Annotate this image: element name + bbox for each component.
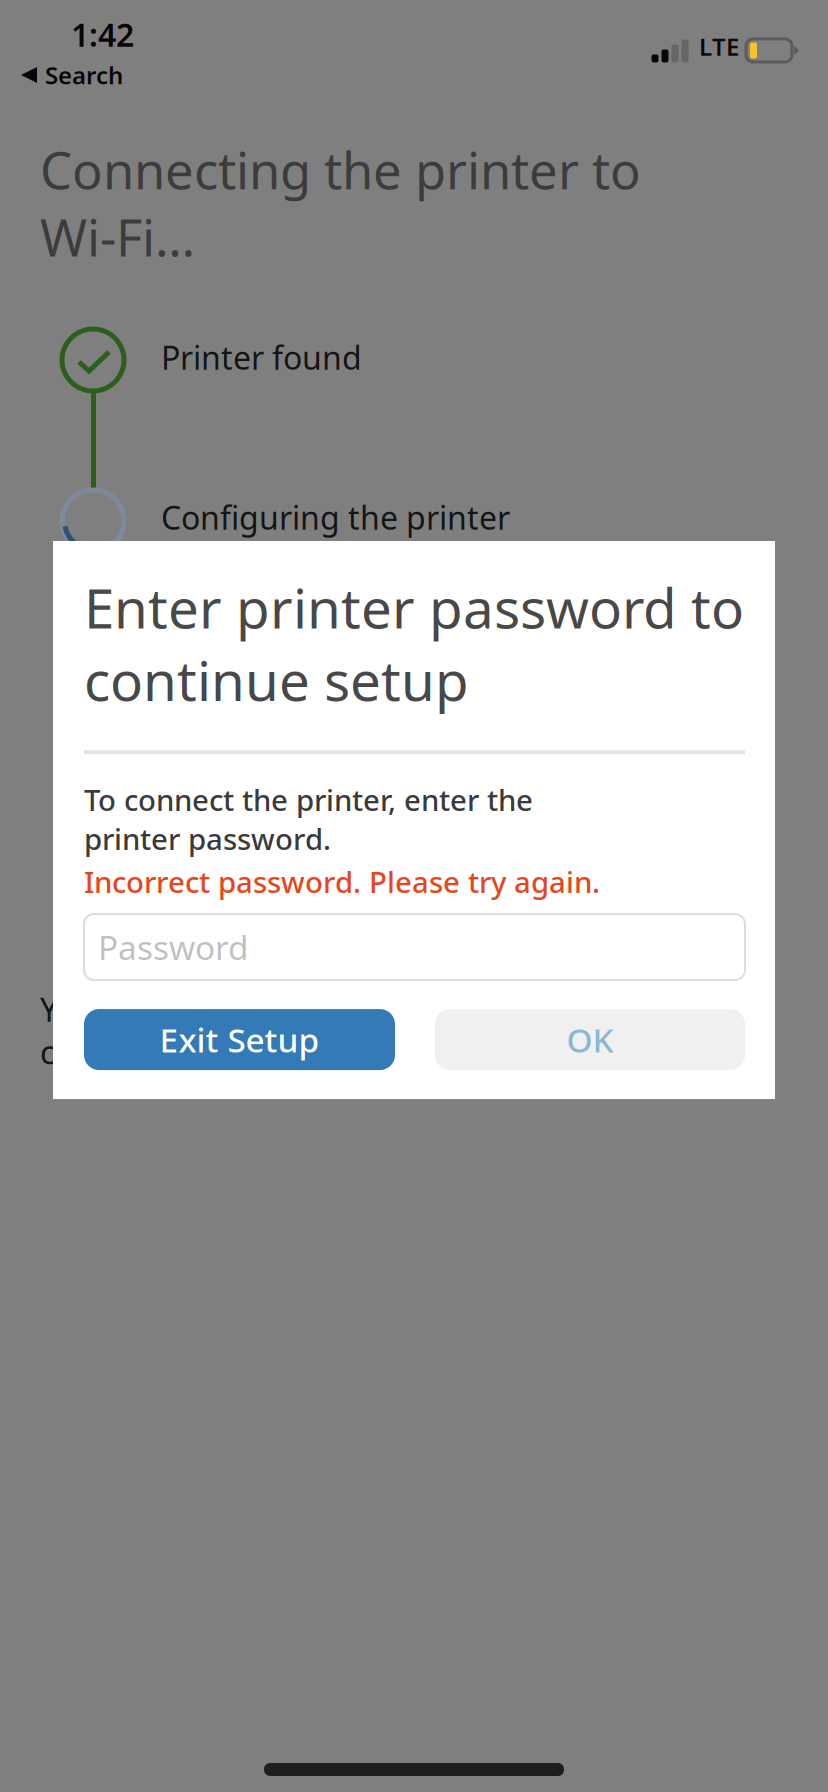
staticText: Exit Setup xyxy=(159,1017,319,1062)
button[interactable]: Back to Search xyxy=(0,58,300,92)
button[interactable]: OK xyxy=(435,1009,745,1070)
staticText: LTE xyxy=(699,31,739,62)
staticText: Incorrect password. Please try again. xyxy=(84,862,600,901)
button[interactable]: Exit Setup xyxy=(84,1009,395,1070)
staticText: Password xyxy=(98,925,249,969)
staticText: Connecting the printer to Wi-Fi… xyxy=(40,136,641,271)
staticText: Enter printer password to continue setup xyxy=(84,571,744,716)
staticText: Printer found xyxy=(161,336,362,378)
staticText: 1:42 xyxy=(71,13,134,55)
staticText: To connect the printer, enter the printe… xyxy=(84,780,533,858)
staticText: Configuring the printer xyxy=(161,496,510,538)
staticText: OK xyxy=(566,1017,613,1062)
staticText: Search xyxy=(45,59,123,91)
button[interactable]: Password xyxy=(84,914,745,980)
staticText: You may need to enter the printer passwo… xyxy=(40,988,742,1073)
